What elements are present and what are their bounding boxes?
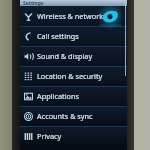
staticText: Wireless & networks [37, 11, 107, 21]
staticText: Applications [37, 91, 79, 101]
button[interactable]: Accounts & sync [20, 106, 127, 126]
button[interactable]: Location & security [20, 66, 127, 86]
button[interactable]: Wireless & networks [20, 6, 127, 26]
staticText: Location & security [37, 71, 103, 81]
staticText: Settings [23, 0, 44, 6]
button[interactable]: Sound & display [20, 46, 127, 66]
staticText: Call settings [37, 31, 79, 41]
staticText: Accounts & sync [37, 111, 93, 121]
staticText: Sound & display [37, 51, 93, 61]
button[interactable]: Privacy [20, 126, 127, 146]
button[interactable]: Applications [20, 86, 127, 106]
button[interactable]: Call settings [20, 26, 127, 46]
staticText: Privacy [37, 131, 62, 141]
